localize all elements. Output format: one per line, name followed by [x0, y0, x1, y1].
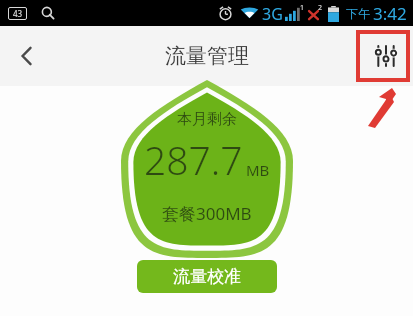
staticText: 3:42	[373, 2, 407, 25]
staticText: 3G	[262, 3, 283, 25]
button[interactable]: Back	[0, 29, 54, 83]
staticText: 套餐300MB	[162, 202, 252, 225]
staticText: 1	[300, 3, 305, 13]
staticText: 43	[13, 8, 23, 19]
staticText: MB	[246, 160, 270, 180]
staticText: 本月剩余	[177, 110, 237, 129]
button[interactable]: 流量校准	[137, 260, 277, 293]
staticText: 流量管理	[165, 43, 249, 69]
staticText: 下午	[346, 6, 370, 21]
staticText: 流量校准	[173, 266, 241, 287]
button[interactable]: Settings	[359, 29, 413, 83]
staticText: 287.7	[144, 133, 243, 186]
staticText: 2	[318, 3, 323, 13]
